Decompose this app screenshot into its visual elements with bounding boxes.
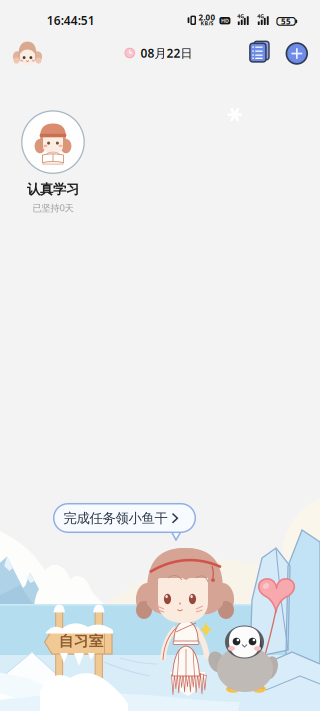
staticText: 08月22日: [141, 45, 193, 61]
staticText: 自习室: [59, 632, 104, 650]
staticText: 4G: [237, 13, 244, 20]
staticText: 4G: [257, 13, 264, 20]
staticText: 2.00: [198, 12, 215, 23]
staticText: 16:44:51: [47, 12, 95, 28]
staticText: 完成任务领小鱼干: [63, 510, 167, 526]
button[interactable]: 完成任务领小鱼干: [0, 0, 320, 711]
staticText: 已坚持0天: [32, 201, 73, 214]
staticText: HD: [221, 17, 229, 24]
staticText: 认真学习: [27, 181, 79, 197]
button[interactable]: 认真学习: [15, 110, 91, 214]
staticText: KB/S: [200, 20, 213, 27]
button[interactable]: Add habit: [285, 41, 309, 65]
button[interactable]: 08月22日: [124, 45, 193, 61]
button[interactable]: Plan list: [248, 40, 270, 64]
button[interactable]: Profile: [12, 40, 42, 66]
staticText: 55: [281, 16, 291, 27]
